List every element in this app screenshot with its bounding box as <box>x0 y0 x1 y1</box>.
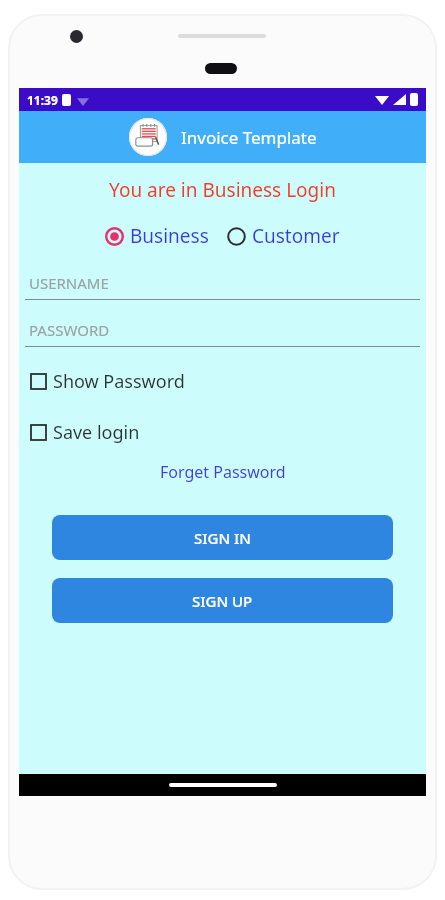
button[interactable]: Customer <box>227 223 340 249</box>
button[interactable]: Forget Password <box>19 461 426 483</box>
button[interactable]: Show Password <box>31 369 426 394</box>
staticText: Customer <box>252 223 340 249</box>
other: Invoice Template logo <box>129 118 167 156</box>
button[interactable]: USERNAME <box>25 273 420 300</box>
staticText: SIGN IN <box>194 528 251 548</box>
staticText: 11:39 <box>27 92 58 108</box>
staticText: SIGN UP <box>192 591 253 611</box>
staticText: Business <box>130 223 209 249</box>
staticText: Show Password <box>53 369 185 394</box>
staticText: You are in Business Login <box>19 177 426 203</box>
staticText: USERNAME <box>29 273 109 293</box>
button[interactable]: PASSWORD <box>25 320 420 347</box>
button[interactable]: SIGN IN <box>52 515 393 560</box>
staticText: Invoice Template <box>181 126 317 149</box>
button[interactable]: SIGN UP <box>52 578 393 623</box>
button[interactable]: Business <box>105 223 209 249</box>
button[interactable]: Save login <box>31 420 426 445</box>
staticText: Forget Password <box>160 461 286 483</box>
staticText: Save login <box>53 420 140 445</box>
staticText: PASSWORD <box>29 320 110 340</box>
